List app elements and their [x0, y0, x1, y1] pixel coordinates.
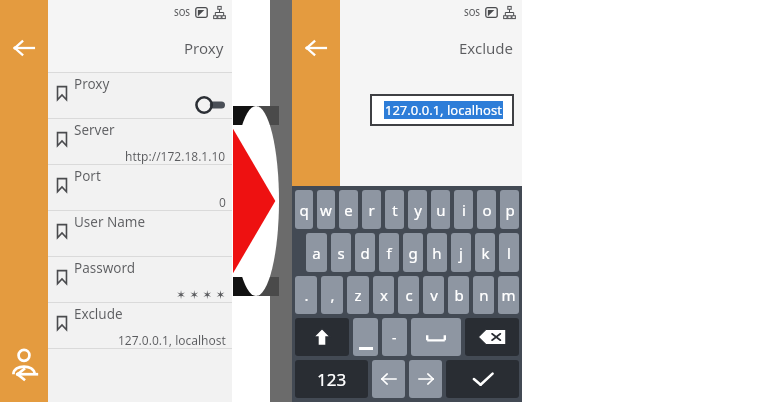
button[interactable] [353, 318, 378, 356]
button[interactable]: Proxy [48, 73, 232, 119]
button[interactable]: b [448, 276, 469, 314]
staticText: s [337, 243, 345, 263]
staticText: SOS [464, 7, 481, 19]
staticText: g [408, 243, 418, 263]
button[interactable]: User Name [48, 211, 232, 257]
staticText: b [454, 285, 464, 305]
staticText: y [414, 200, 422, 220]
button[interactable]: v [423, 276, 444, 314]
button[interactable]: . [295, 276, 317, 314]
staticText: n [479, 285, 489, 305]
staticText: q [299, 200, 309, 220]
button[interactable]: y [408, 190, 427, 229]
button[interactable]: i [454, 190, 473, 229]
button[interactable]: o [477, 190, 496, 229]
staticText: m [501, 285, 516, 305]
button[interactable]: w [317, 190, 335, 229]
button[interactable]: e [339, 190, 358, 229]
staticText: ✶ ✶ ✶ ✶ [176, 286, 226, 302]
button[interactable]: t [385, 190, 404, 229]
button[interactable]: g [403, 233, 423, 272]
staticText: t [392, 200, 398, 220]
button[interactable]: m [498, 276, 519, 314]
staticText: e [344, 200, 353, 220]
button[interactable]: a [306, 233, 327, 272]
button[interactable]: 123 [295, 360, 368, 398]
button[interactable]: d [355, 233, 375, 272]
button[interactable]: s [331, 233, 351, 272]
button[interactable]: f [379, 233, 399, 272]
staticText: Server [74, 121, 115, 139]
staticText: http://172.18.1.10 [125, 148, 226, 164]
button[interactable]: l [499, 233, 519, 272]
button[interactable]: k [475, 233, 495, 272]
button[interactable] [446, 360, 519, 398]
staticText: . [304, 285, 309, 305]
button[interactable]: Port [48, 165, 232, 211]
staticText: l [507, 243, 511, 263]
staticText: Exclude [459, 38, 514, 58]
staticText: d [360, 243, 370, 263]
button[interactable]: u [431, 190, 450, 229]
button[interactable]: r [362, 190, 381, 229]
staticText: 127.0.0.1, localhost [385, 101, 502, 119]
button[interactable]: p [500, 190, 519, 229]
staticText: - [392, 328, 397, 347]
button[interactable]: q [295, 190, 313, 229]
staticText: Port [74, 167, 101, 185]
staticText: h [432, 243, 442, 263]
button[interactable]: z [347, 276, 369, 314]
staticText: z [354, 285, 362, 305]
staticText: a [312, 243, 321, 263]
staticText: Proxy [184, 38, 224, 58]
staticText: p [505, 200, 515, 220]
button[interactable]: Back [298, 30, 334, 66]
button[interactable] [409, 360, 442, 398]
staticText: c [405, 285, 413, 305]
staticText: , [330, 285, 335, 305]
staticText: SOS [174, 7, 191, 19]
staticText: j [459, 243, 463, 263]
button[interactable] [295, 318, 349, 356]
staticText: Exclude [74, 305, 123, 323]
button[interactable]: h [427, 233, 447, 272]
button[interactable]: x [373, 276, 394, 314]
button[interactable]: c [398, 276, 419, 314]
button[interactable]: n [473, 276, 494, 314]
staticText: o [482, 200, 492, 220]
button[interactable]: Back [6, 30, 42, 66]
button[interactable]: j [451, 233, 471, 272]
button[interactable]: 127.0.0.1, localhost [370, 94, 514, 126]
staticText: 127.0.0.1, localhost [118, 332, 226, 348]
staticText: x [380, 285, 388, 305]
staticText: Password [74, 259, 136, 277]
staticText: k [481, 243, 490, 263]
button[interactable]: Server [48, 119, 232, 165]
staticText: 0 [219, 194, 226, 210]
button[interactable]: Exclude [48, 303, 232, 349]
button[interactable]: Password [48, 257, 232, 303]
staticText: Proxy [74, 75, 110, 93]
staticText: r [368, 200, 375, 220]
staticText: v [430, 285, 438, 305]
staticText: f [386, 243, 392, 263]
staticText: 123 [317, 368, 347, 391]
button[interactable] [465, 318, 519, 356]
staticText: i [462, 200, 466, 220]
button[interactable]: - [382, 318, 407, 356]
staticText: User Name [74, 213, 146, 231]
button[interactable]: Switch user [8, 348, 40, 380]
staticText: u [436, 200, 446, 220]
button[interactable] [411, 318, 461, 356]
button[interactable] [372, 360, 405, 398]
staticText: w [320, 200, 332, 220]
button[interactable]: , [321, 276, 343, 314]
